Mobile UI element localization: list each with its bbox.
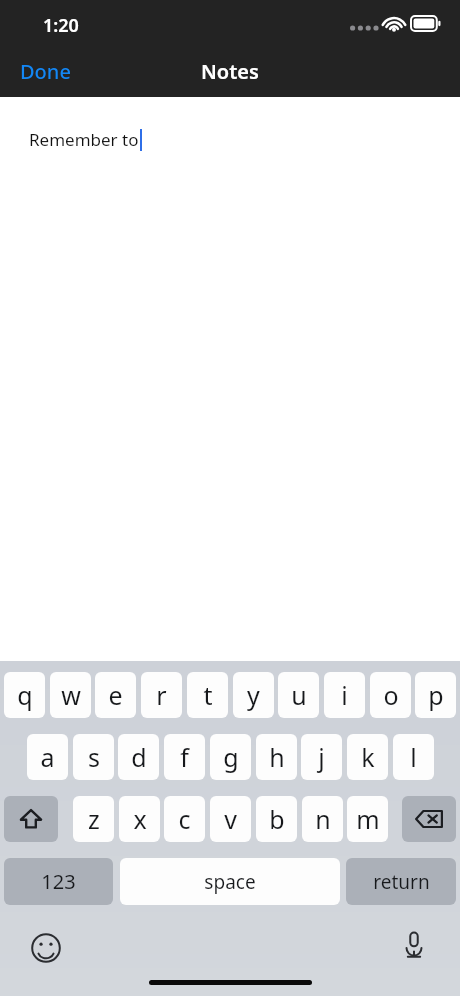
button[interactable]: y xyxy=(233,672,274,718)
staticText: t xyxy=(203,678,213,712)
button[interactable]: Dictation xyxy=(394,926,434,966)
button[interactable]: w xyxy=(50,672,91,718)
staticText: v xyxy=(224,802,237,836)
button[interactable]: j xyxy=(301,734,342,780)
button[interactable]: b xyxy=(256,796,297,842)
staticText: l xyxy=(410,740,417,774)
button[interactable]: space xyxy=(120,858,340,905)
staticText: i xyxy=(341,678,348,712)
staticText: Remember to xyxy=(29,128,139,151)
staticText: m xyxy=(356,802,380,836)
staticText: f xyxy=(180,740,189,774)
staticText: 123 xyxy=(41,868,76,895)
staticText: c xyxy=(178,802,191,836)
button[interactable]: k xyxy=(347,734,388,780)
staticText: 1:20 xyxy=(43,13,79,38)
staticText: o xyxy=(383,678,399,712)
staticText: Done xyxy=(20,58,71,85)
button[interactable]: s xyxy=(73,734,114,780)
staticText: return xyxy=(373,869,430,895)
button[interactable]: o xyxy=(370,672,411,718)
staticText: b xyxy=(269,802,285,836)
button[interactable]: r xyxy=(141,672,182,718)
staticText: d xyxy=(131,740,147,774)
button[interactable]: e xyxy=(95,672,136,718)
button[interactable]: m xyxy=(347,796,388,842)
staticText: z xyxy=(88,802,100,836)
button[interactable]: p xyxy=(415,672,456,718)
button[interactable]: z xyxy=(73,796,114,842)
staticText: g xyxy=(223,740,239,774)
button[interactable]: Done xyxy=(20,58,71,85)
button[interactable]: i xyxy=(324,672,365,718)
button[interactable]: Backspace xyxy=(402,796,456,842)
staticText: a xyxy=(40,740,55,774)
button[interactable]: Emoji keyboard xyxy=(26,928,66,968)
staticText: e xyxy=(108,678,123,712)
button[interactable]: g xyxy=(210,734,251,780)
staticText: w xyxy=(61,678,81,712)
staticText: x xyxy=(133,802,147,836)
staticText: h xyxy=(269,740,285,774)
button[interactable]: 123 xyxy=(4,858,113,905)
staticText: q xyxy=(17,678,33,712)
button[interactable]: return xyxy=(346,858,456,905)
button[interactable]: v xyxy=(210,796,251,842)
staticText: n xyxy=(315,802,331,836)
button[interactable]: l xyxy=(393,734,434,780)
staticText: y xyxy=(247,678,260,712)
staticText: j xyxy=(318,740,325,774)
button[interactable]: h xyxy=(256,734,297,780)
staticText: Notes xyxy=(201,58,259,85)
button[interactable]: Shift xyxy=(4,796,58,842)
staticText: space xyxy=(204,869,256,895)
staticText: p xyxy=(428,678,444,712)
button[interactable]: c xyxy=(164,796,205,842)
button[interactable]: q xyxy=(4,672,45,718)
button[interactable]: a xyxy=(27,734,68,780)
staticText: r xyxy=(156,678,167,712)
button[interactable]: t xyxy=(187,672,228,718)
button[interactable]: n xyxy=(302,796,343,842)
staticText: s xyxy=(88,740,100,774)
staticText: k xyxy=(361,740,375,774)
button[interactable]: d xyxy=(118,734,159,780)
button[interactable]: u xyxy=(278,672,319,718)
button[interactable]: f xyxy=(164,734,205,780)
button[interactable]: x xyxy=(119,796,160,842)
staticText: u xyxy=(291,678,307,712)
